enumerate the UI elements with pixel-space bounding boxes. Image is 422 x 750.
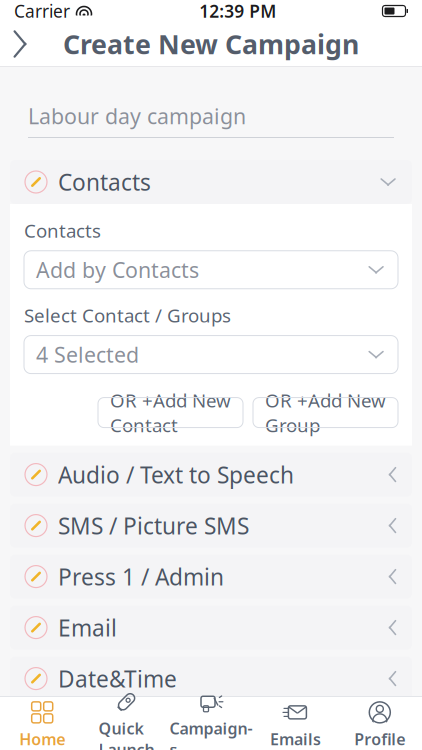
button[interactable]: Date&Time (10, 657, 412, 701)
staticText: Contacts (24, 218, 101, 243)
staticText: Quick Launch (99, 718, 155, 750)
button[interactable]: Profile (338, 693, 422, 750)
staticText: 12:39 PM (199, 0, 276, 22)
staticText: Profile (354, 728, 405, 750)
staticText: Home (19, 728, 65, 750)
button[interactable]: Add by Contacts (24, 251, 398, 289)
button[interactable]: Audio / Text to Speech (10, 453, 412, 497)
staticText: Create New Campaign (63, 26, 359, 62)
staticText: 4 Selected (36, 340, 139, 369)
button[interactable]: Campaigns (169, 683, 253, 750)
staticText: Campaigns (169, 718, 252, 750)
staticText: Select Contact / Groups (24, 303, 231, 328)
staticText: OR +Add New Contact (110, 388, 231, 437)
button[interactable]: Quick Launch (84, 683, 169, 750)
button[interactable]: Email (10, 606, 412, 650)
button[interactable]: 4 Selected (24, 336, 398, 374)
staticText: SMS / Picture SMS (58, 510, 249, 541)
button[interactable]: Home (0, 693, 84, 750)
button[interactable]: Press 1 / Admin (10, 555, 412, 599)
staticText: Emails (270, 728, 321, 750)
staticText: OR +Add New Group (265, 388, 386, 437)
staticText: Date&Time (58, 663, 177, 694)
button[interactable]: Emails (253, 693, 338, 750)
staticText: Contacts (58, 167, 151, 197)
button[interactable]: SMS / Picture SMS (10, 504, 412, 548)
staticText: Carrier (14, 0, 70, 22)
button[interactable]: OR +Add New Group (253, 398, 398, 428)
button[interactable]: Back (0, 21, 40, 67)
staticText: Labour day campaign (28, 102, 246, 130)
staticText: Audio / Text to Speech (58, 459, 294, 490)
button[interactable]: Contacts (10, 160, 412, 204)
staticText: Email (58, 612, 117, 643)
button[interactable]: OR +Add New Contact (98, 398, 243, 428)
staticText: Add by Contacts (36, 256, 199, 284)
staticText: Press 1 / Admin (58, 561, 224, 592)
